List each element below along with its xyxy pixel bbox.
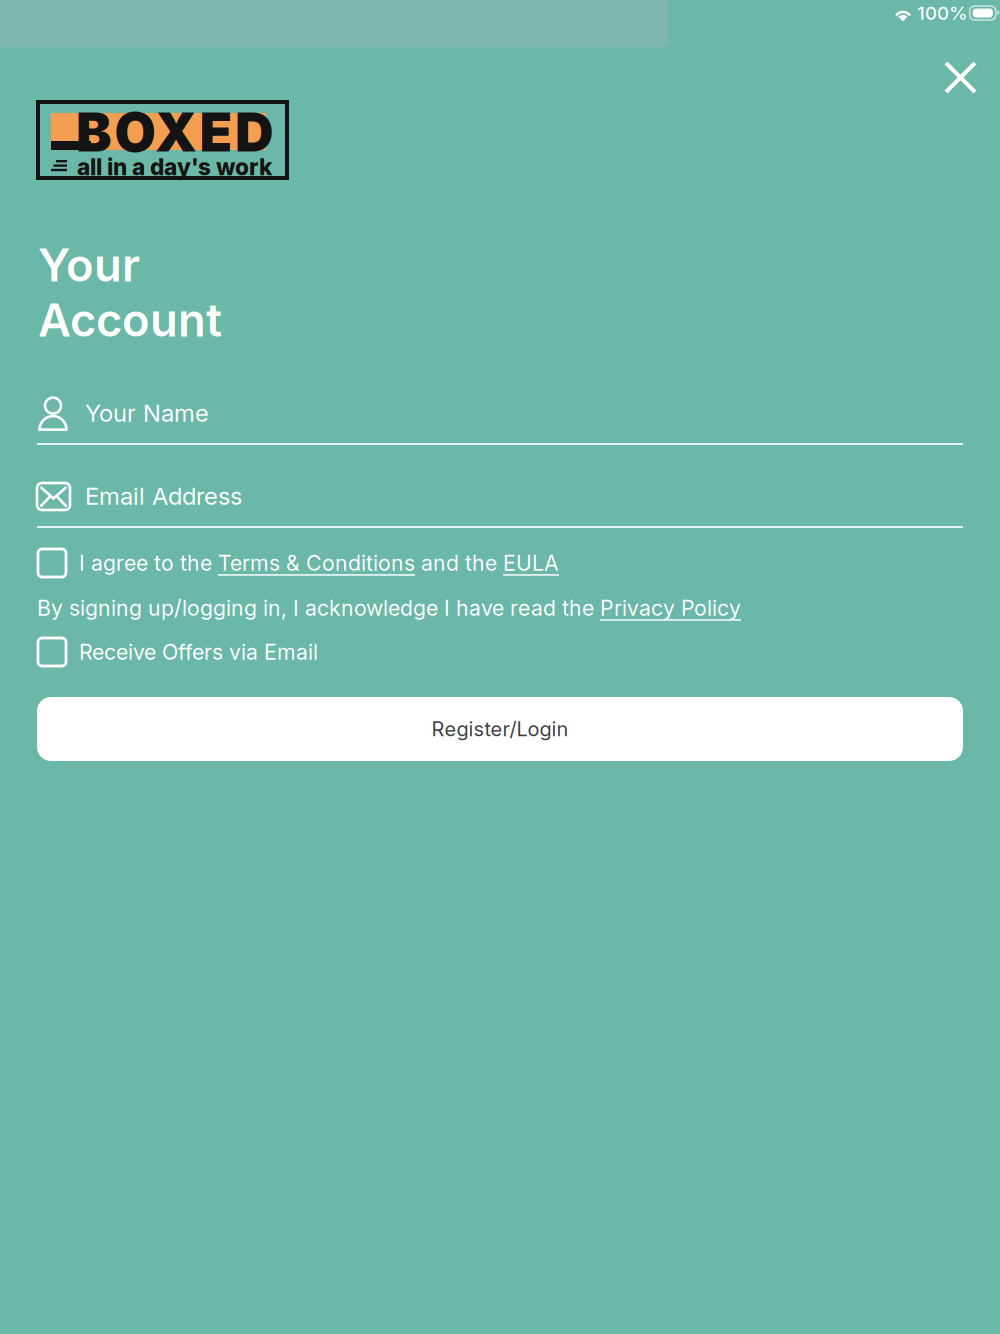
staticText: Your Name xyxy=(85,398,209,427)
button[interactable]: Register/Login xyxy=(37,697,963,761)
staticText: Receive Offers via Email xyxy=(79,639,318,665)
staticText: 100% xyxy=(917,2,968,24)
staticText: Email Address xyxy=(85,481,242,510)
button[interactable]: Email Address xyxy=(37,483,963,528)
staticText: I agree to the Terms & Conditions and th… xyxy=(79,550,559,576)
staticText: all in a day's work xyxy=(77,153,272,181)
button[interactable]: Close xyxy=(930,47,991,108)
button[interactable]: Receive Offers via Email xyxy=(38,635,964,669)
staticText: Account xyxy=(38,293,222,347)
staticText: Register/Login xyxy=(431,717,568,741)
button[interactable]: Your Name xyxy=(37,396,963,446)
staticText: By signing up/logging in, I acknowledge … xyxy=(37,595,741,621)
button[interactable]: I agree to the Terms & Conditions and th… xyxy=(38,546,964,580)
staticText: BOXED xyxy=(76,100,274,164)
button[interactable]: By signing up/logging in, I acknowledge … xyxy=(37,593,963,623)
staticText: Your xyxy=(38,238,140,292)
